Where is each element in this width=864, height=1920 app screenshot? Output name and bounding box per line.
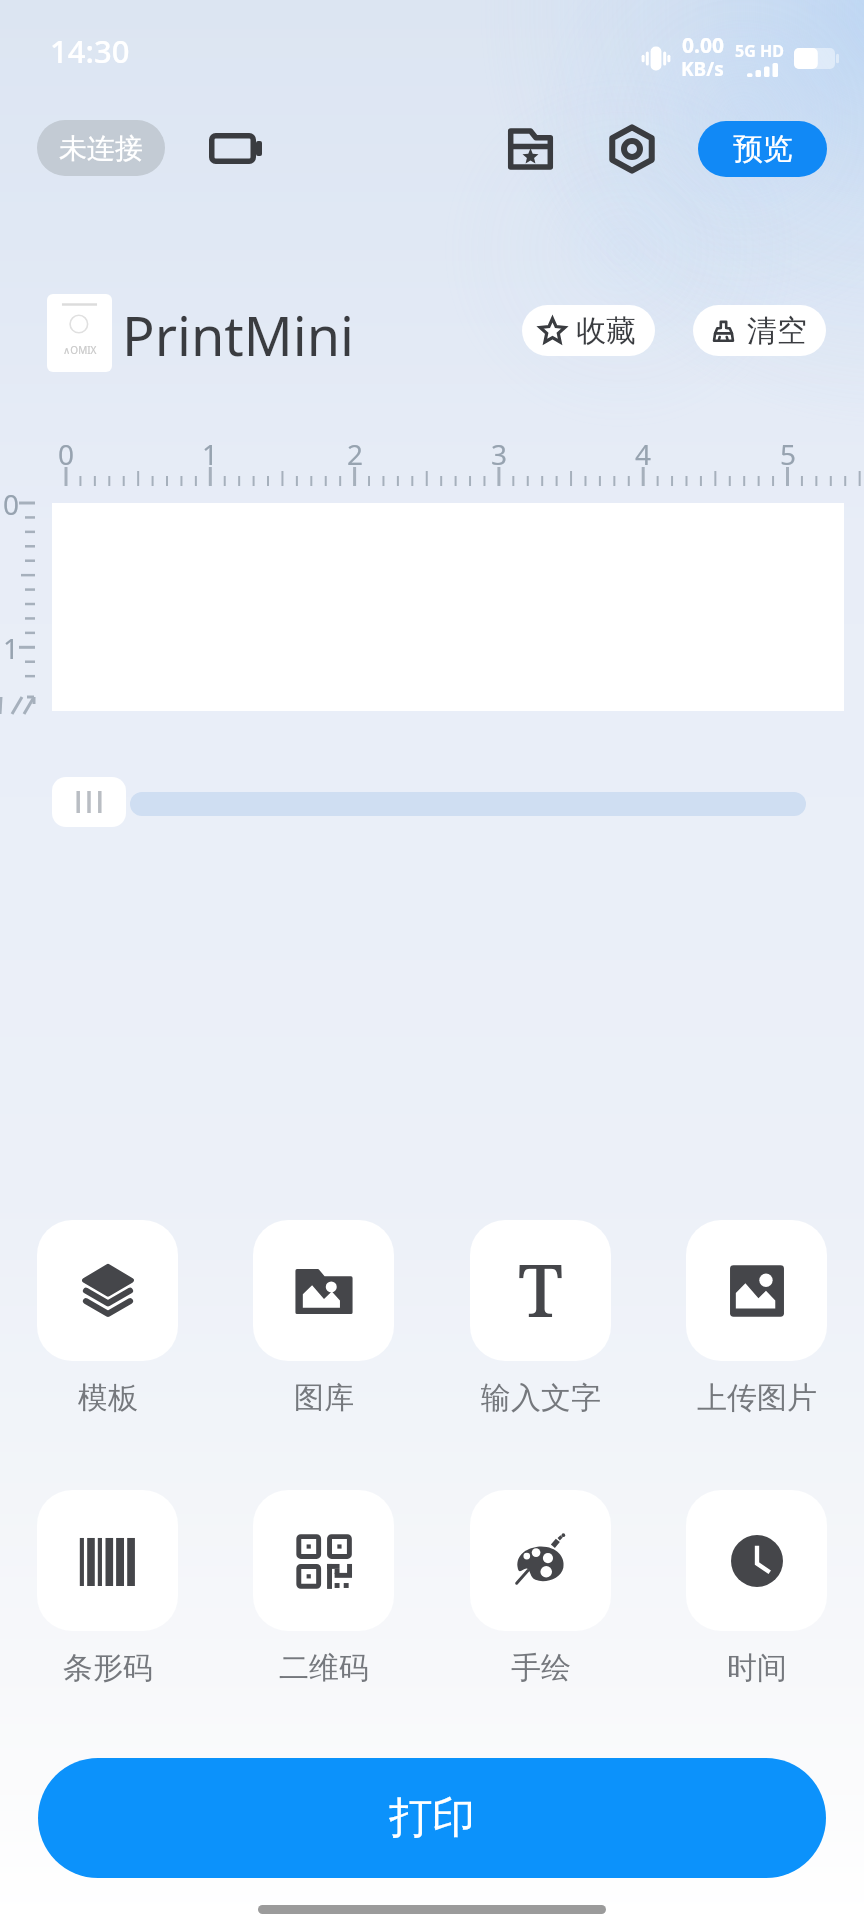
button[interactable]: 图库 <box>253 1220 394 1417</box>
button[interactable]: Settings <box>601 118 663 180</box>
button[interactable]: Battery status <box>205 120 265 176</box>
button[interactable]: 模板 <box>37 1220 178 1417</box>
staticText: 1 <box>3 629 20 667</box>
staticText: 0 <box>3 485 20 523</box>
staticText: KB/s <box>681 56 724 82</box>
staticText: 预览 <box>733 130 793 168</box>
staticText: PrintMini <box>122 298 354 372</box>
staticText: 时间 <box>727 1649 787 1687</box>
staticText: 4 <box>635 435 652 473</box>
staticText: 14:30 <box>50 30 130 72</box>
staticText: 图库 <box>294 1379 354 1417</box>
staticText: 5 <box>780 435 797 473</box>
staticText: 条形码 <box>63 1649 153 1687</box>
staticText: 0.00 <box>682 31 724 60</box>
button[interactable]: Resize handle <box>52 777 126 827</box>
button[interactable]: 预览 <box>698 121 827 177</box>
button[interactable]: T <box>470 1220 611 1417</box>
staticText: 0 <box>58 435 75 473</box>
button[interactable]: 手绘 <box>470 1490 611 1687</box>
staticText: T <box>518 1240 563 1338</box>
staticText: 5G <box>735 40 756 62</box>
staticText: 2 <box>347 435 364 473</box>
button[interactable]: 未连接 <box>37 120 165 176</box>
button[interactable]: 打印 <box>38 1758 826 1878</box>
staticText: HD <box>760 40 784 62</box>
staticText: 模板 <box>78 1379 138 1417</box>
button[interactable]: 时间 <box>686 1490 827 1687</box>
staticText: 手绘 <box>511 1649 571 1687</box>
staticText: 清空 <box>747 312 807 350</box>
staticText: 打印 <box>389 1791 475 1845</box>
button[interactable]: Saved templates <box>499 118 561 180</box>
staticText: 收藏 <box>576 312 636 350</box>
button[interactable]: 二维码 <box>253 1490 394 1687</box>
button[interactable]: 条形码 <box>37 1490 178 1687</box>
staticText: 二维码 <box>279 1649 369 1687</box>
staticText: 输入文字 <box>481 1379 601 1417</box>
staticText: ∧OMIX <box>63 343 97 357</box>
staticText: 未连接 <box>59 131 143 166</box>
button[interactable]: 上传图片 <box>686 1220 827 1417</box>
button[interactable]: 清空 <box>693 305 826 356</box>
staticText: 3 <box>491 435 508 473</box>
staticText: 1 <box>202 435 219 473</box>
staticText: 上传图片 <box>697 1379 817 1417</box>
button[interactable]: 收藏 <box>522 305 655 356</box>
